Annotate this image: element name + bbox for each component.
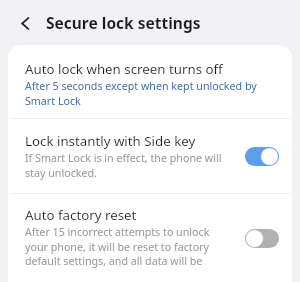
- button[interactable]: Lock instantly with Side key: [8, 119, 292, 193]
- staticText: Lock instantly with Side key: [25, 132, 196, 150]
- button[interactable]: Switch on: [241, 142, 283, 170]
- button[interactable]: Back: [11, 9, 39, 37]
- staticText: Secure lock settings: [46, 12, 201, 33]
- button[interactable]: Auto lock when screen turns off: [8, 45, 292, 118]
- staticText: If Smart Lock is in effect, the phone wi…: [25, 151, 225, 180]
- staticText: Auto factory reset: [25, 206, 137, 224]
- staticText: After 5 seconds except when kept unlocke…: [25, 79, 283, 108]
- staticText: Auto lock when screen turns off: [25, 60, 223, 78]
- button[interactable]: Switch off: [241, 224, 283, 252]
- staticText: After 15 incorrect attempts to unlock yo…: [25, 225, 233, 270]
- button[interactable]: Auto factory reset: [8, 194, 292, 282]
